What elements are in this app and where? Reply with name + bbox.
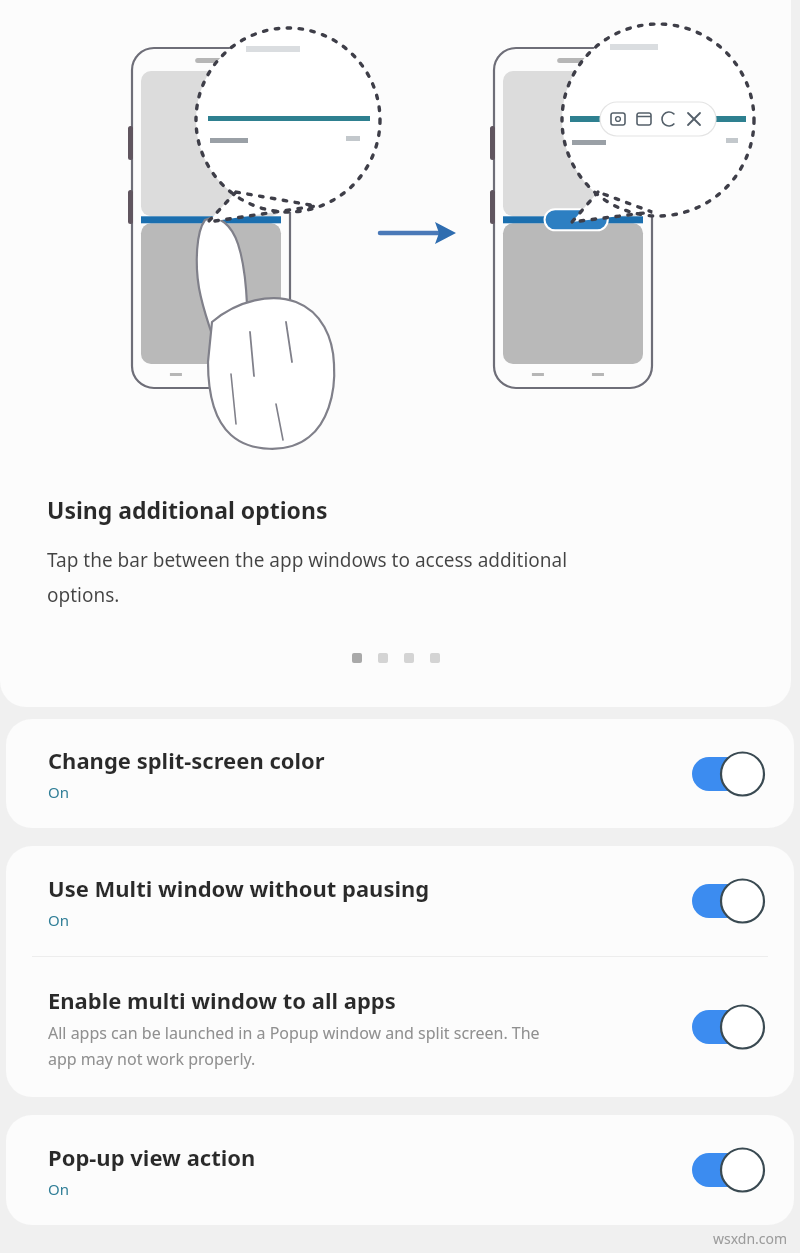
staticText: On [48,1179,69,1199]
staticText: Using additional options [47,494,328,525]
staticText: Pop-up view action [48,1142,256,1172]
button[interactable]: Toggle, on [692,878,766,924]
staticText: Tap the bar between the app windows to a… [47,547,568,607]
button[interactable]: Toggle, on [692,1147,766,1193]
staticText: Use Multi window without pausing [48,873,430,903]
staticText: wsxdn.com [713,1229,788,1248]
staticText: All apps can be launched in a Popup wind… [48,1022,540,1070]
staticText: Enable multi window to all apps [48,985,396,1015]
button[interactable] [430,653,440,663]
staticText: On [48,910,69,930]
button[interactable]: Toggle, on [692,1004,766,1050]
button[interactable]: Enable multi window to all apps [6,957,794,1097]
button[interactable] [378,653,388,663]
button[interactable]: Pop-up view action [6,1115,794,1225]
button[interactable] [352,653,362,663]
staticText: Change split-screen color [48,745,325,775]
button[interactable]: Change split-screen color [6,719,794,828]
button[interactable]: Toggle, on [692,751,766,797]
button[interactable]: Use Multi window without pausing [6,846,794,956]
button[interactable] [404,653,414,663]
staticText: On [48,782,69,802]
